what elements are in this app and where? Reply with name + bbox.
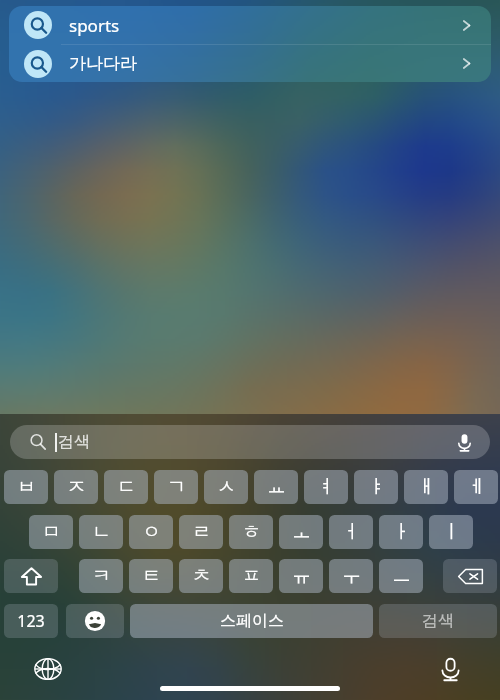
button[interactable]: ㅓ: [329, 515, 373, 549]
staticText: ㄴ: [92, 520, 111, 544]
staticText: ㅡ: [392, 564, 411, 588]
staticText: ㄹ: [192, 520, 211, 544]
staticText: ㅊ: [192, 564, 211, 588]
staticText: ㅓ: [342, 520, 361, 544]
button[interactable]: 검색: [10, 425, 490, 459]
staticText: ㅈ: [67, 475, 86, 499]
button[interactable]: ㅣ: [429, 515, 473, 549]
staticText: ㅍ: [242, 564, 261, 588]
button[interactable]: ㅇ: [129, 515, 173, 549]
staticText: ㅋ: [92, 564, 111, 588]
staticText: ㄷ: [117, 475, 136, 499]
staticText: ㅑ: [367, 475, 386, 499]
button[interactable]: Change keyboard: [26, 647, 70, 691]
button[interactable]: ㅋ: [79, 559, 123, 593]
staticText: ㅔ: [467, 475, 486, 499]
staticText: ㅕ: [317, 475, 336, 499]
button[interactable]: ㅛ: [254, 470, 298, 504]
button[interactable]: ㅈ: [54, 470, 98, 504]
staticText: ㅗ: [292, 520, 311, 544]
button[interactable]: ㅡ: [379, 559, 423, 593]
button[interactable]: ㅕ: [304, 470, 348, 504]
staticText: sports: [69, 14, 120, 37]
staticText: 검색: [422, 611, 454, 631]
button[interactable]: ㄱ: [154, 470, 198, 504]
staticText: ㅂ: [17, 475, 36, 499]
button[interactable]: ㅗ: [279, 515, 323, 549]
button[interactable]: ㄹ: [179, 515, 223, 549]
staticText: ㅇ: [142, 520, 161, 544]
button[interactable]: Dictation: [428, 647, 472, 691]
button[interactable]: Shift: [4, 559, 58, 593]
button[interactable]: ㅔ: [454, 470, 498, 504]
staticText: 가나다라: [69, 53, 137, 74]
staticText: ㅠ: [292, 564, 311, 588]
button[interactable]: ㅅ: [204, 470, 248, 504]
staticText: ㅣ: [442, 520, 461, 544]
staticText: ㅜ: [342, 564, 361, 588]
staticText: 스페이스: [220, 611, 284, 631]
button[interactable]: ㅑ: [354, 470, 398, 504]
staticText: ㅅ: [217, 475, 236, 499]
staticText: ㅐ: [417, 475, 436, 499]
button[interactable]: Emoji: [66, 604, 124, 638]
staticText: 123: [17, 610, 45, 632]
staticText: ㅁ: [42, 520, 61, 544]
staticText: 검색: [58, 432, 90, 452]
button[interactable]: ㅍ: [229, 559, 273, 593]
button[interactable]: ㅌ: [129, 559, 173, 593]
button[interactable]: 가나다라: [9, 45, 491, 82]
button[interactable]: ㅐ: [404, 470, 448, 504]
button[interactable]: ㅊ: [179, 559, 223, 593]
button[interactable]: Backspace: [443, 559, 497, 593]
staticText: ㅎ: [242, 520, 261, 544]
button[interactable]: ㅎ: [229, 515, 273, 549]
button[interactable]: ㅁ: [29, 515, 73, 549]
button[interactable]: sports: [9, 6, 491, 44]
staticText: ㅛ: [267, 475, 286, 499]
button[interactable]: 검색: [379, 604, 497, 638]
staticText: ㅌ: [142, 564, 161, 588]
button[interactable]: ㅏ: [379, 515, 423, 549]
button[interactable]: 123: [4, 604, 58, 638]
other: Dictation: [455, 433, 474, 452]
button[interactable]: ㅂ: [4, 470, 48, 504]
button[interactable]: ㅠ: [279, 559, 323, 593]
button[interactable]: ㄷ: [104, 470, 148, 504]
staticText: ㄱ: [167, 475, 186, 499]
staticText: ㅏ: [392, 520, 411, 544]
button[interactable]: ㅜ: [329, 559, 373, 593]
button[interactable]: ㄴ: [79, 515, 123, 549]
button[interactable]: 스페이스: [130, 604, 373, 638]
